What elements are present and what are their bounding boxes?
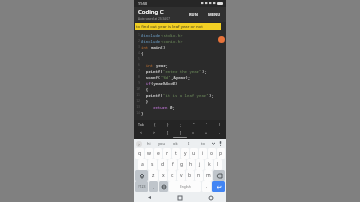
button[interactable]: Expand toolbar <box>136 141 142 147</box>
button[interactable]: p <box>217 148 225 159</box>
staticText: m <box>206 172 211 179</box>
button[interactable]: g <box>178 159 186 170</box>
staticText: int <box>141 63 156 68</box>
button[interactable]: e <box>154 148 162 159</box>
button[interactable]: - <box>213 128 226 136</box>
button[interactable]: More suggestions <box>210 139 216 148</box>
staticText: " <box>193 122 195 127</box>
button[interactable]: v <box>177 170 185 181</box>
staticText: { <box>141 87 149 92</box>
button[interactable]: ; <box>174 120 187 128</box>
button[interactable]: i <box>199 148 207 159</box>
button[interactable]: hi <box>142 139 155 148</box>
button[interactable]: k <box>205 159 213 170</box>
button[interactable]: } <box>161 120 174 128</box>
button[interactable]: . <box>202 181 211 192</box>
button[interactable]: r <box>163 148 171 159</box>
staticText: 11:50 <box>138 1 147 6</box>
staticText: ] <box>180 130 182 135</box>
button[interactable]: Home <box>164 193 195 202</box>
button[interactable]: ok <box>168 139 182 148</box>
staticText: return <box>141 105 170 110</box>
button[interactable]: = <box>187 128 200 136</box>
button[interactable]: Emoji <box>149 181 158 192</box>
button[interactable]: Recent apps <box>195 193 226 202</box>
button[interactable]: m <box>204 170 212 181</box>
button[interactable]: u <box>190 148 198 159</box>
button[interactable]: Language <box>159 181 168 192</box>
staticText: 14 <box>135 111 140 115</box>
staticText: o <box>210 150 214 157</box>
button[interactable]: j <box>196 159 204 170</box>
button[interactable]: x <box>159 170 167 181</box>
button[interactable]: q <box>135 148 144 159</box>
staticText: (year%4==0) <box>151 81 178 86</box>
button[interactable]: y <box>181 148 189 159</box>
button[interactable]: > <box>148 128 161 136</box>
staticText: 0; <box>170 105 175 110</box>
button[interactable]: ' <box>200 120 213 128</box>
button[interactable]: h <box>187 159 195 170</box>
button[interactable]: o <box>208 148 216 159</box>
button[interactable]: a <box>138 159 147 170</box>
button[interactable]: to <box>196 139 210 148</box>
staticText: c <box>171 172 174 179</box>
button[interactable]: Shift <box>135 170 148 181</box>
staticText: { <box>141 51 144 56</box>
button[interactable]: MENU <box>206 11 223 18</box>
button[interactable]: Back <box>134 193 164 202</box>
button[interactable]: " <box>187 120 200 128</box>
button[interactable]: Voice input <box>216 139 224 148</box>
staticText: scanf( <box>141 75 161 80</box>
staticText: hi <box>147 141 151 146</box>
other: Assistant bubble <box>218 36 225 43</box>
staticText: Coding C <box>138 8 164 16</box>
staticText: English <box>180 185 191 189</box>
button[interactable]: ] <box>174 128 187 136</box>
button[interactable]: n <box>195 170 203 181</box>
button[interactable]: + <box>200 128 213 136</box>
staticText: 6 <box>135 63 140 67</box>
staticText: you <box>158 141 165 146</box>
button[interactable]: ( <box>213 120 226 128</box>
staticText: h <box>189 161 193 168</box>
staticText: <stdio.h> <box>161 33 183 38</box>
staticText: f <box>172 161 174 168</box>
staticText: 12 <box>135 99 140 103</box>
button[interactable]: t <box>172 148 180 159</box>
staticText: ?123 <box>138 184 146 189</box>
button[interactable]: f <box>168 159 177 170</box>
button[interactable]: [ <box>161 128 174 136</box>
staticText: ); <box>202 69 207 74</box>
button[interactable]: Enter <box>212 181 225 192</box>
button[interactable]: w <box>145 148 153 159</box>
button[interactable]: you <box>155 139 168 148</box>
button[interactable]: English <box>169 181 201 192</box>
staticText: r <box>166 150 169 157</box>
staticText: k <box>208 161 211 168</box>
staticText: y <box>184 150 187 157</box>
button[interactable]: { <box>148 120 161 128</box>
button[interactable]: c <box>168 170 176 181</box>
staticText: Tab <box>138 122 144 127</box>
button[interactable]: Tab <box>134 120 148 128</box>
staticText: printf( <box>141 93 163 98</box>
button[interactable]: s <box>148 159 157 170</box>
button[interactable]: z <box>149 170 158 181</box>
button[interactable]: < <box>134 128 148 136</box>
staticText: i <box>202 150 204 157</box>
button[interactable]: RUN <box>187 11 200 18</box>
staticText: { <box>154 122 156 127</box>
staticText: u <box>192 150 196 157</box>
staticText: "%d" <box>161 75 171 80</box>
button[interactable]: b <box>186 170 194 181</box>
staticText: int <box>141 45 151 50</box>
staticText: w <box>147 150 151 157</box>
button[interactable]: Backspace <box>213 170 225 181</box>
staticText: <conio.h> <box>161 39 183 44</box>
staticText: } <box>141 111 144 116</box>
button[interactable]: l <box>214 159 222 170</box>
button[interactable]: ?123 <box>135 181 148 192</box>
button[interactable]: d <box>158 159 167 170</box>
button[interactable]: I <box>182 139 196 148</box>
